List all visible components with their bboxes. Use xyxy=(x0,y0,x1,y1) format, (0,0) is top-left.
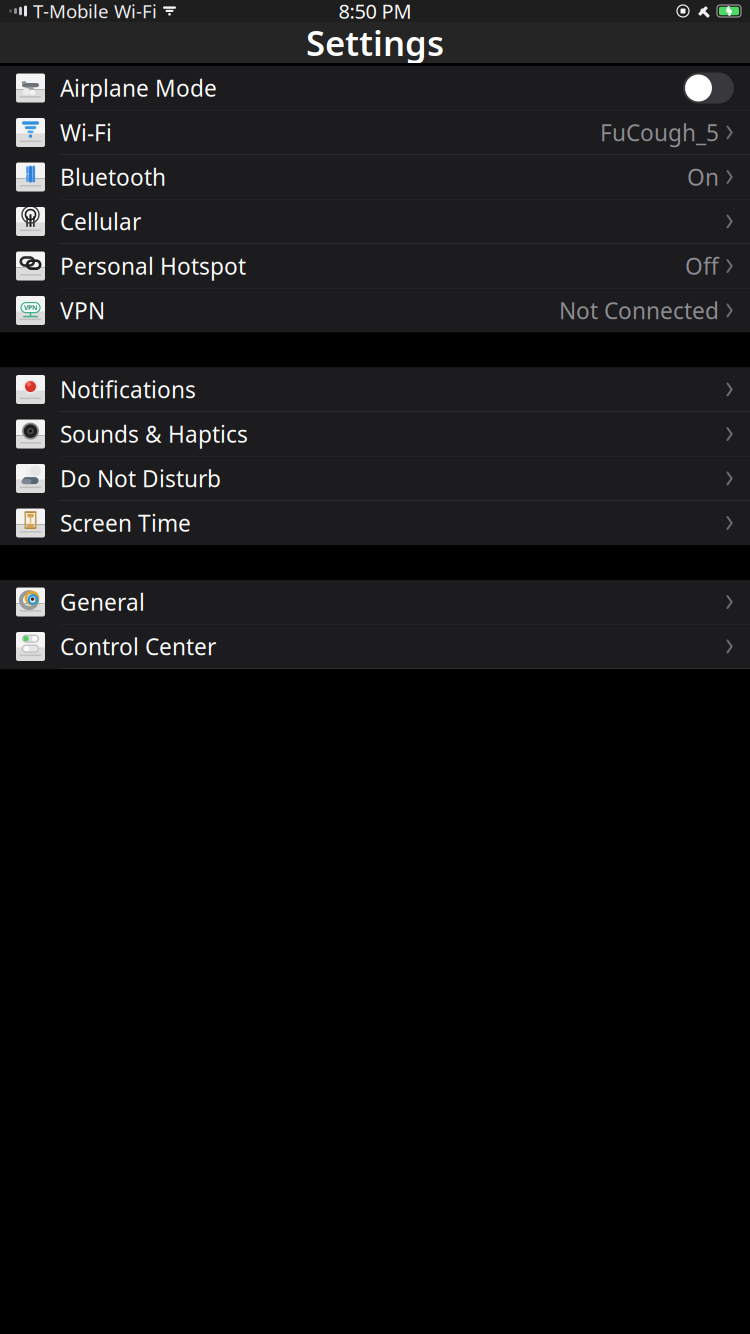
staticText: Off xyxy=(685,251,719,281)
staticText: Notifications xyxy=(60,374,196,404)
button[interactable]: VPN xyxy=(0,288,750,332)
button[interactable]: Bluetooth xyxy=(0,155,750,199)
staticText: Airplane Mode xyxy=(60,73,217,103)
button[interactable]: Notifications xyxy=(0,367,750,411)
button[interactable]: Screen Time xyxy=(0,501,750,545)
staticText: Personal Hotspot xyxy=(60,251,246,281)
staticText: Settings xyxy=(306,19,444,65)
staticText: General xyxy=(60,587,145,617)
staticText: 8:50 PM xyxy=(338,0,411,24)
staticText: VPN xyxy=(60,295,105,325)
staticText: Control Center xyxy=(60,631,216,661)
button[interactable]: Control Center xyxy=(0,624,750,668)
staticText: Bluetooth xyxy=(60,162,166,192)
button[interactable]: Personal Hotspot xyxy=(0,244,750,288)
staticText: Sounds & Haptics xyxy=(60,419,248,449)
button[interactable]: Cellular xyxy=(0,199,750,243)
button[interactable]: Sounds & Haptics xyxy=(0,412,750,456)
button[interactable]: Airplane Mode xyxy=(0,66,750,110)
staticText: Wi-Fi xyxy=(60,117,112,147)
button[interactable]: Wi-Fi xyxy=(0,110,750,154)
staticText: Cellular xyxy=(60,206,141,236)
staticText: On xyxy=(687,162,719,192)
staticText: T-Mobile Wi-Fi xyxy=(33,0,157,23)
staticText: Not Connected xyxy=(559,295,719,325)
staticText: Screen Time xyxy=(60,508,191,538)
button[interactable]: Do Not Disturb xyxy=(0,456,750,500)
staticText: FuCough_5 xyxy=(600,117,719,147)
staticText: Do Not Disturb xyxy=(60,463,221,493)
staticText: VPN xyxy=(24,303,37,312)
button[interactable]: General xyxy=(0,580,750,624)
